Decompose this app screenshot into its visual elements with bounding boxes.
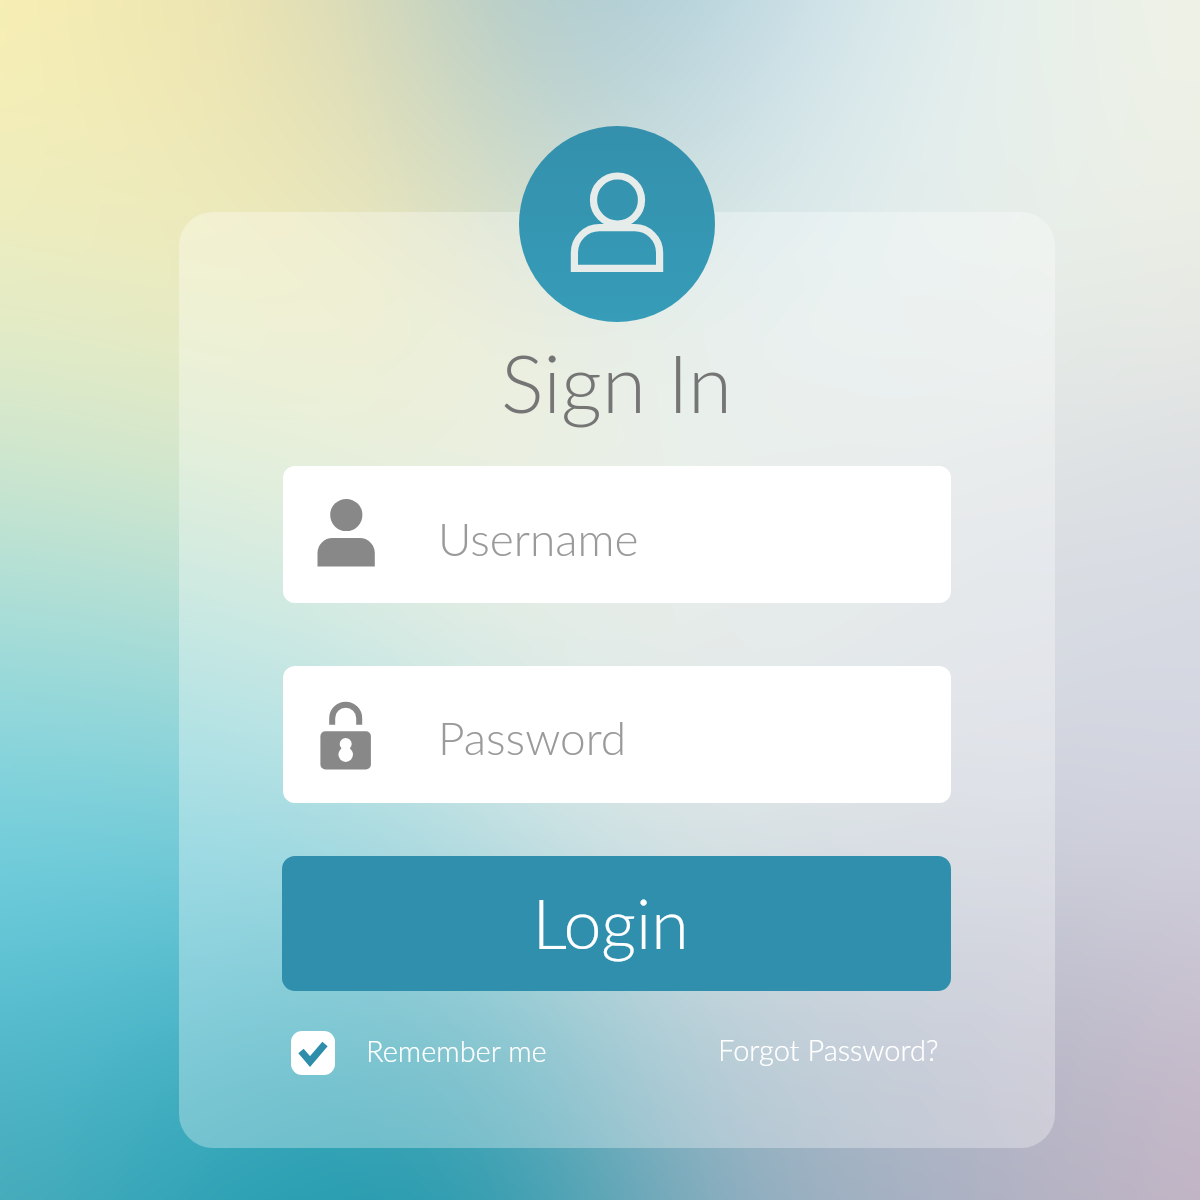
button[interactable] [282,856,951,991]
staticText: Sign In [501,334,732,430]
button[interactable] [291,1031,547,1075]
other: Profile avatar [519,126,715,322]
button[interactable] [283,466,951,603]
staticText: Remember me [366,1033,547,1068]
button[interactable] [283,666,951,803]
staticText: Forgot Password? [718,1032,939,1067]
staticText: Login [532,882,689,964]
staticText: Password [438,710,627,765]
button[interactable] [716,1026,940,1078]
staticText: Username [438,511,639,566]
